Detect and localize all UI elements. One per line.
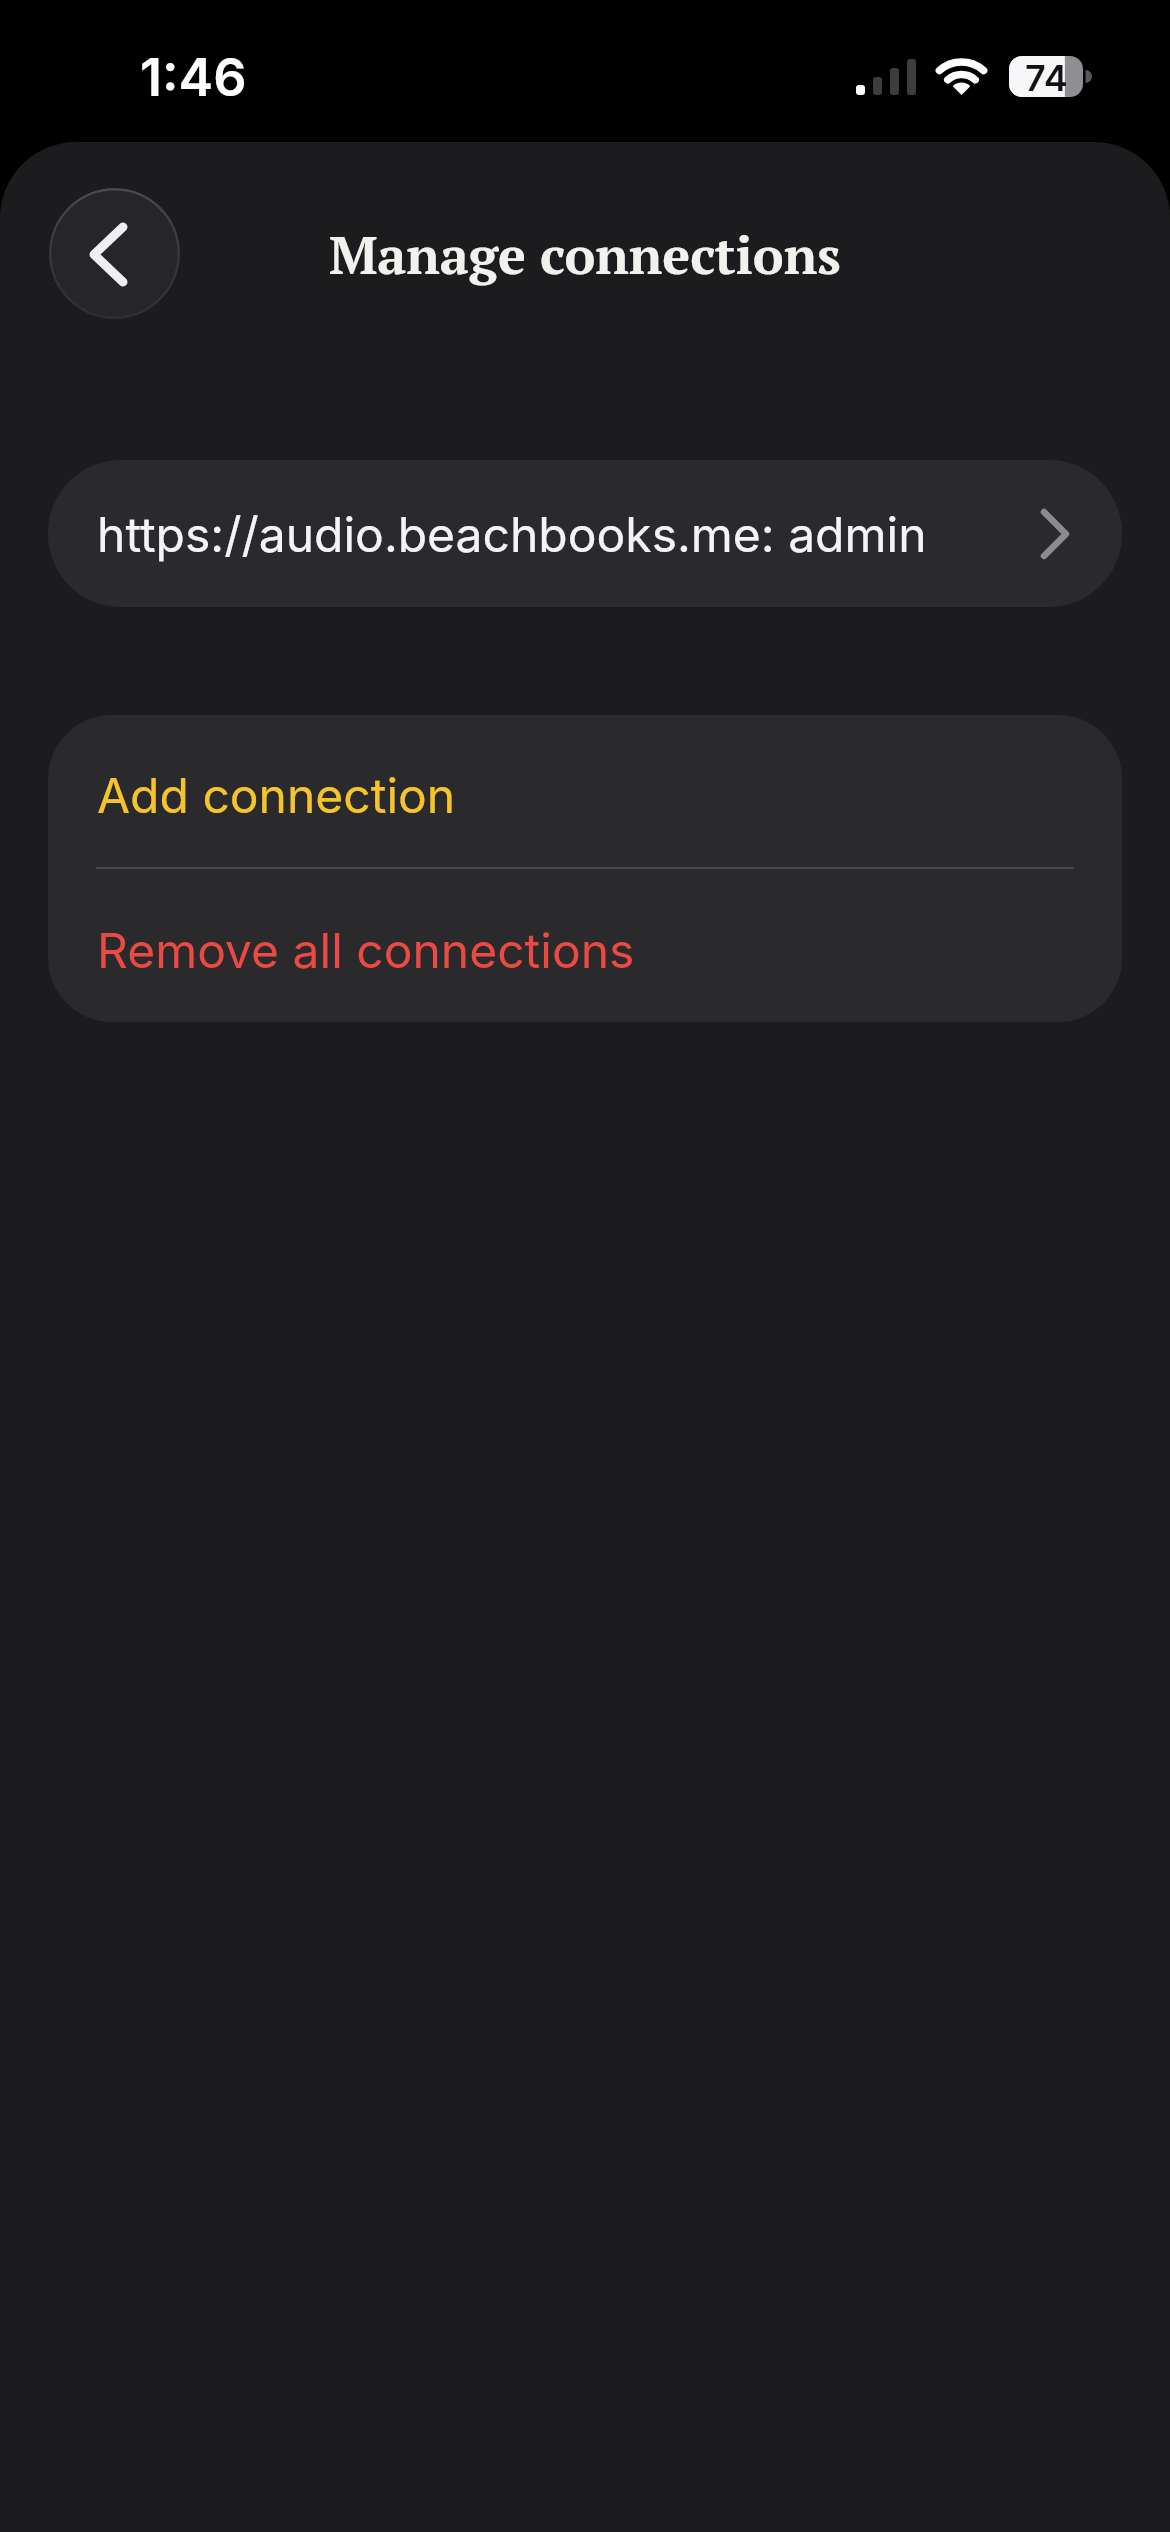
staticText: Remove all connections xyxy=(97,921,635,979)
staticText: 74 xyxy=(1025,56,1068,97)
button[interactable]: Remove all connections xyxy=(48,869,1122,1022)
staticText: 1:46 xyxy=(140,46,247,108)
staticText: Add connection xyxy=(97,766,456,824)
staticText: Manage connections xyxy=(329,220,841,289)
button[interactable]: Add connection xyxy=(48,715,1122,867)
button[interactable]: https://audio.beachbooks.me: admin xyxy=(48,460,1122,607)
button[interactable] xyxy=(49,188,180,319)
staticText: https://audio.beachbooks.me: admin xyxy=(97,505,927,563)
